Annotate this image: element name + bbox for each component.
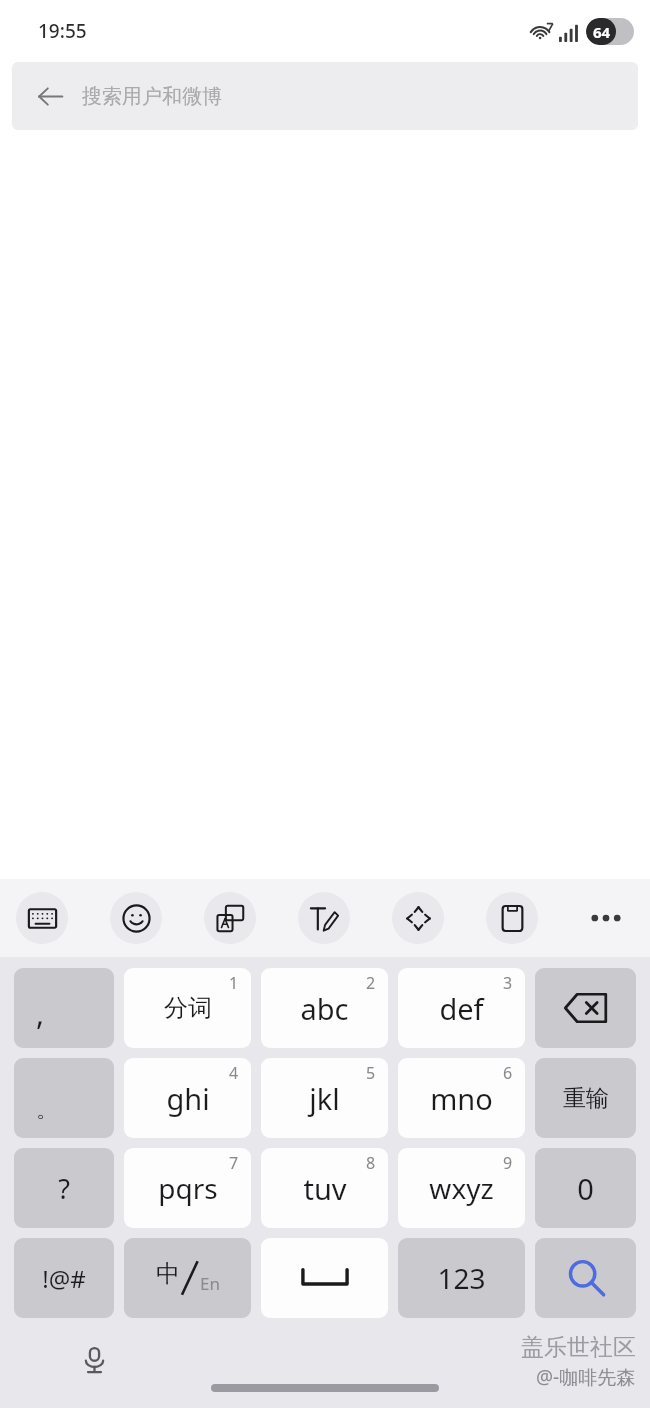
button[interactable]: Switch Chinese English xyxy=(124,1238,251,1318)
staticText: 6 xyxy=(503,1062,513,1084)
button[interactable]: Handwriting xyxy=(298,892,350,944)
button[interactable]: Keyboard layout xyxy=(16,892,68,944)
staticText: 盖乐世社区 xyxy=(521,1333,636,1362)
staticText: 3 xyxy=(503,972,513,994)
button[interactable]: Voice input xyxy=(72,1338,116,1382)
staticText: 搜索用户和微博 xyxy=(82,84,222,109)
button[interactable]: pqrs xyxy=(124,1148,251,1228)
staticText: 2 xyxy=(366,972,376,994)
button[interactable]: tuv xyxy=(261,1148,388,1228)
button[interactable]: Back xyxy=(32,78,68,114)
button[interactable]: Space xyxy=(261,1238,388,1318)
staticText: abc xyxy=(300,989,349,1028)
staticText: 8 xyxy=(366,1152,376,1174)
button[interactable]: 0 xyxy=(535,1148,636,1228)
staticText: 64 xyxy=(593,22,611,42)
button[interactable]: ghi xyxy=(124,1058,251,1138)
button[interactable]: More options xyxy=(580,892,632,944)
button[interactable]: Clipboard xyxy=(486,892,538,944)
staticText: 中 xyxy=(156,1259,180,1289)
staticText: , xyxy=(36,993,45,1034)
staticText: 9 xyxy=(503,1152,513,1174)
staticText: 。 xyxy=(36,1096,58,1124)
button[interactable]: 重输 xyxy=(535,1058,636,1138)
staticText: wxyz xyxy=(429,1169,494,1207)
staticText: 5 xyxy=(366,1062,376,1084)
staticText: mno xyxy=(430,1079,493,1118)
button[interactable]: mno xyxy=(398,1058,525,1138)
staticText: ghi xyxy=(166,1079,210,1118)
staticText: !@# xyxy=(42,1262,86,1295)
staticText: 0 xyxy=(577,1169,594,1208)
button[interactable]: wxyz xyxy=(398,1148,525,1228)
staticText: 7 xyxy=(229,1152,239,1174)
button[interactable]: def xyxy=(398,968,525,1048)
button[interactable]: Move cursor xyxy=(392,892,444,944)
button[interactable]: !@# xyxy=(14,1238,114,1318)
button[interactable]: abc xyxy=(261,968,388,1048)
button[interactable]: 123 xyxy=(398,1238,525,1318)
staticText: 1 xyxy=(229,972,239,994)
staticText: tuv xyxy=(303,1169,347,1208)
staticText: 123 xyxy=(437,1259,486,1297)
button[interactable]: 分词 xyxy=(124,968,251,1048)
staticText: 4 xyxy=(229,1062,239,1084)
button[interactable]: , xyxy=(14,968,114,1048)
staticText: def xyxy=(439,989,484,1028)
staticText: En xyxy=(200,1272,220,1295)
button[interactable]: Search xyxy=(535,1238,636,1318)
button[interactable]: jkl xyxy=(261,1058,388,1138)
staticText: 19:55 xyxy=(38,18,87,44)
button[interactable]: Emoji xyxy=(110,892,162,944)
staticText: 重输 xyxy=(563,1084,609,1113)
button[interactable]: Backspace xyxy=(535,968,636,1048)
button[interactable]: 。 xyxy=(14,1058,114,1138)
button[interactable]: Back xyxy=(12,62,638,130)
staticText: jkl xyxy=(309,1079,340,1118)
staticText: ? xyxy=(58,1170,70,1207)
staticText: pqrs xyxy=(158,1169,218,1207)
staticText: 分词 xyxy=(164,993,212,1023)
button[interactable]: ? xyxy=(14,1148,114,1228)
button[interactable]: Translate xyxy=(204,892,256,944)
staticText: @-咖啡先森 xyxy=(536,1364,636,1390)
